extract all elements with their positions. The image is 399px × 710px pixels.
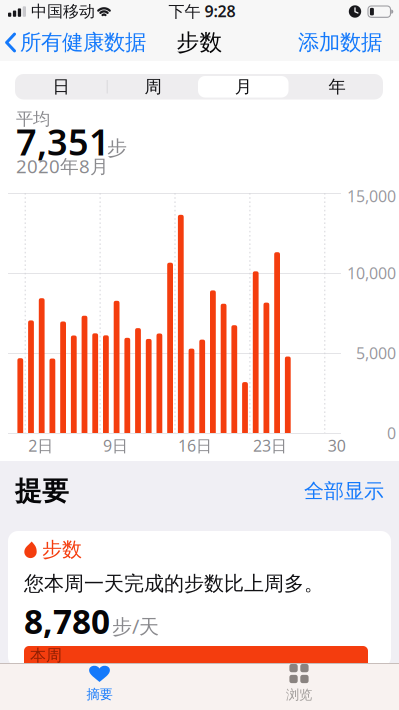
staticText: 平均: [16, 108, 50, 130]
button[interactable]: 月: [198, 74, 288, 99]
staticText: 5,000: [356, 342, 396, 364]
button[interactable]: 返回：所有健康数据: [5, 20, 163, 64]
staticText: 9日: [103, 435, 128, 456]
button[interactable]: 全部显示: [294, 476, 384, 506]
staticText: 添加数据: [298, 29, 382, 56]
staticText: 23日: [253, 435, 287, 456]
staticText: 所有健康数据: [20, 29, 146, 56]
staticText: 周: [144, 76, 161, 97]
staticText: 步: [107, 136, 127, 160]
button[interactable]: 浏览: [219, 660, 379, 706]
staticText: 日: [52, 76, 69, 97]
staticText: 2020年8月: [16, 154, 109, 178]
staticText: 16日: [178, 435, 212, 456]
staticText: 步数: [176, 29, 222, 56]
staticText: 提要: [15, 475, 69, 507]
button[interactable]: 年: [292, 74, 382, 99]
staticText: 步数: [42, 537, 82, 562]
staticText: 15,000: [347, 185, 396, 207]
button[interactable]: 添加数据: [282, 20, 382, 64]
staticText: 0: [387, 422, 396, 444]
staticText: 浏览: [286, 687, 312, 703]
staticText: 7,351: [16, 118, 110, 165]
staticText: 年: [328, 76, 345, 97]
staticText: 8,780: [24, 599, 110, 643]
button[interactable]: 日: [16, 74, 106, 99]
staticText: 全部显示: [304, 479, 384, 503]
staticText: 下午 9:28: [168, 0, 235, 22]
staticText: 步/天: [112, 613, 159, 639]
staticText: 2日: [28, 435, 53, 456]
staticText: 月: [235, 76, 252, 97]
staticText: 您本周一天完成的步数比上周多。: [24, 571, 324, 596]
button[interactable]: 步数: [8, 531, 391, 667]
staticText: 本周: [30, 646, 62, 665]
staticText: 10,000: [347, 262, 396, 284]
staticText: 中国移动: [31, 2, 95, 21]
staticText: 30: [328, 435, 346, 456]
button[interactable]: 摘要: [19, 660, 179, 706]
button[interactable]: 周: [108, 74, 198, 99]
staticText: 摘要: [86, 686, 112, 702]
